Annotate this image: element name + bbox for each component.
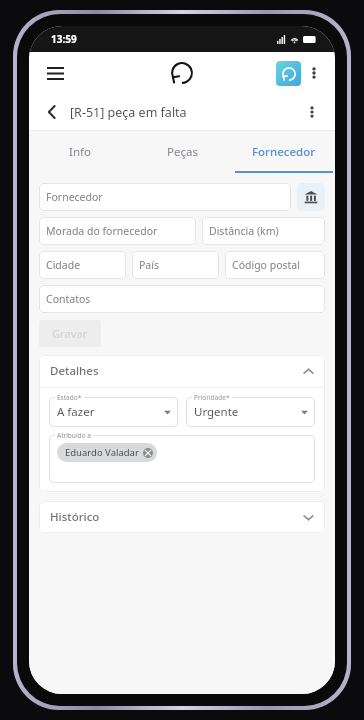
button[interactable]: More options bbox=[301, 60, 327, 86]
staticText: Gravar bbox=[52, 326, 88, 341]
staticText: Fornecedor bbox=[252, 144, 316, 160]
button[interactable]: Detalhes bbox=[39, 355, 325, 387]
button[interactable]: Fornecedor bbox=[39, 183, 291, 211]
staticText: Peças bbox=[167, 144, 198, 160]
staticText: Histórico bbox=[50, 509, 100, 525]
staticText: A fazer bbox=[57, 404, 95, 420]
staticText: País bbox=[139, 258, 159, 272]
staticText: Contatos bbox=[46, 292, 91, 306]
button[interactable]: País bbox=[132, 251, 219, 279]
button[interactable] bbox=[49, 397, 178, 427]
button[interactable]: Código postal bbox=[225, 251, 325, 279]
button[interactable]: More options bbox=[299, 99, 325, 125]
button[interactable]: Eduardo Valadar bbox=[57, 443, 157, 462]
button[interactable]: Fornecedor bbox=[233, 131, 335, 173]
staticText: Eduardo Valadar bbox=[65, 446, 139, 459]
staticText: Morada do fornecedor bbox=[46, 224, 158, 238]
staticText: Distância (km) bbox=[209, 224, 279, 238]
button[interactable]: Cidade bbox=[39, 251, 126, 279]
staticText: Atribuído a bbox=[57, 431, 91, 440]
staticText: Cidade bbox=[46, 258, 81, 272]
button[interactable]: Gravar bbox=[39, 320, 101, 347]
button[interactable]: Info bbox=[29, 131, 131, 173]
staticText: Fornecedor bbox=[46, 190, 103, 204]
staticText: Detalhes bbox=[50, 363, 99, 379]
button[interactable]: Distância (km) bbox=[202, 217, 325, 245]
button[interactable]: Menu bbox=[39, 57, 71, 89]
staticText: Urgente bbox=[194, 404, 239, 420]
button[interactable] bbox=[186, 397, 315, 427]
staticText: Prioridade* bbox=[194, 393, 230, 402]
button[interactable]: Peças bbox=[131, 131, 233, 173]
staticText: Código postal bbox=[232, 258, 300, 272]
button[interactable]: Restore bbox=[276, 61, 301, 86]
staticText: Info bbox=[69, 144, 91, 160]
staticText: Estado* bbox=[57, 393, 82, 402]
button[interactable]: Histórico bbox=[39, 501, 325, 533]
button[interactable]: Contatos bbox=[39, 285, 325, 313]
staticText: 13:59 bbox=[51, 32, 77, 46]
button[interactable]: Morada do fornecedor bbox=[39, 217, 196, 245]
button[interactable]: Back bbox=[39, 99, 65, 125]
button[interactable]: Select supplier bbox=[297, 183, 325, 211]
button[interactable] bbox=[49, 435, 315, 483]
staticText: [R-51] peça em falta bbox=[70, 104, 187, 121]
